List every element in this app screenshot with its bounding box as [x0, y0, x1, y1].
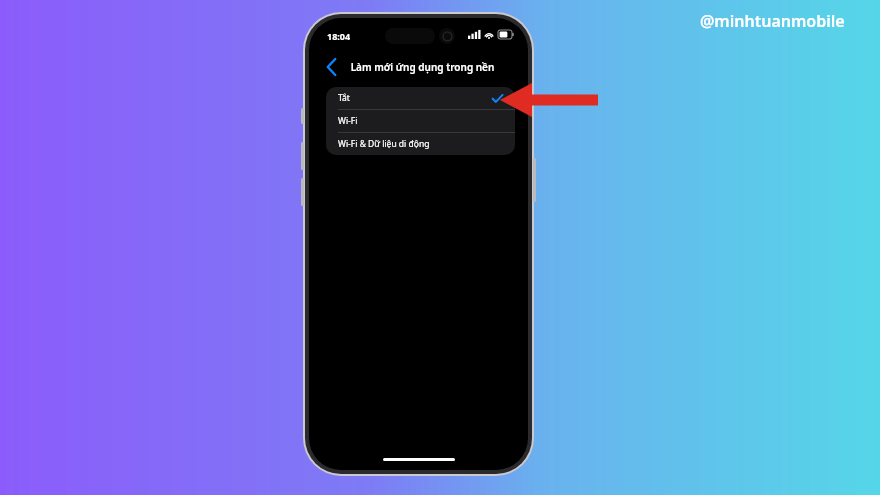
staticText: @minhtuanmobile	[700, 10, 845, 32]
button[interactable]: Wi-Fi	[326, 110, 515, 132]
staticText: 18:04	[327, 30, 351, 42]
staticText: Wi-Fi	[338, 115, 358, 127]
staticText: Tắt	[338, 92, 350, 104]
button[interactable]: Tắt	[326, 87, 515, 109]
staticText: Làm mới ứng dụng trong nền	[313, 60, 528, 74]
button[interactable]: Wi-Fi & Dữ liệu di động	[326, 133, 515, 155]
button[interactable]: Back	[317, 52, 345, 82]
staticText: Wi-Fi & Dữ liệu di động	[338, 138, 430, 150]
